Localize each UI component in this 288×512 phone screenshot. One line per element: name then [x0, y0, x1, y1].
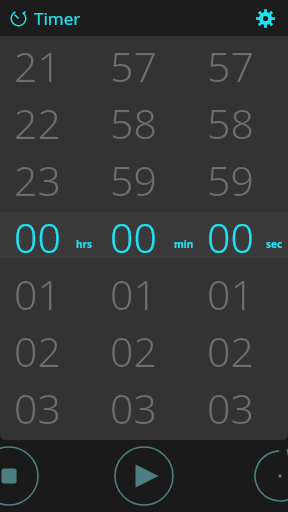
button[interactable]: 02: [190, 323, 270, 375]
staticText: 01: [110, 266, 157, 318]
staticText: 00: [110, 209, 157, 261]
button[interactable]: 02: [0, 323, 77, 375]
staticText: 01: [207, 266, 254, 318]
button[interactable]: 58: [190, 95, 270, 147]
staticText: 02: [110, 323, 157, 375]
button[interactable]: 01: [0, 266, 77, 318]
button[interactable]: 22: [0, 95, 77, 147]
button[interactable]: Start: [113, 445, 175, 507]
button[interactable]: 57: [190, 38, 270, 90]
button[interactable]: 57: [93, 38, 173, 90]
staticText: sec: [266, 237, 283, 251]
staticText: 02: [14, 323, 61, 375]
button[interactable]: 03: [93, 380, 173, 432]
staticText: 58: [207, 95, 254, 147]
staticText: 22: [14, 95, 61, 147]
staticText: 57: [110, 38, 157, 90]
button[interactable]: 58: [93, 95, 173, 147]
staticText: 59: [110, 152, 157, 204]
staticText: 03: [14, 380, 61, 432]
staticText: 02: [207, 323, 254, 375]
staticText: 21: [14, 38, 61, 90]
staticText: 00: [207, 209, 254, 261]
button[interactable]: 00: [0, 209, 77, 261]
button[interactable]: 21: [0, 38, 77, 90]
button[interactable]: Settings: [251, 4, 279, 32]
button[interactable]: 01: [93, 266, 173, 318]
button[interactable]: 59: [93, 152, 173, 204]
staticText: 23: [14, 152, 61, 204]
staticText: 03: [110, 380, 157, 432]
button[interactable]: 01: [190, 266, 270, 318]
staticText: 01: [14, 266, 61, 318]
button[interactable]: 00: [93, 209, 173, 261]
staticText: hrs: [76, 237, 92, 251]
staticText: 58: [110, 95, 157, 147]
staticText: min: [174, 237, 194, 251]
button[interactable]: 23: [0, 152, 77, 204]
staticText: Timer: [34, 7, 81, 30]
button[interactable]: 59: [190, 152, 270, 204]
button[interactable]: 03: [190, 380, 270, 432]
button[interactable]: 02: [93, 323, 173, 375]
staticText: 57: [207, 38, 254, 90]
button[interactable]: Stop: [0, 444, 41, 508]
button[interactable]: 03: [0, 380, 77, 432]
button[interactable]: 00: [190, 209, 270, 261]
button[interactable]: Reset: [250, 446, 288, 506]
staticText: 59: [207, 152, 254, 204]
staticText: 03: [207, 380, 254, 432]
staticText: 00: [14, 209, 61, 261]
